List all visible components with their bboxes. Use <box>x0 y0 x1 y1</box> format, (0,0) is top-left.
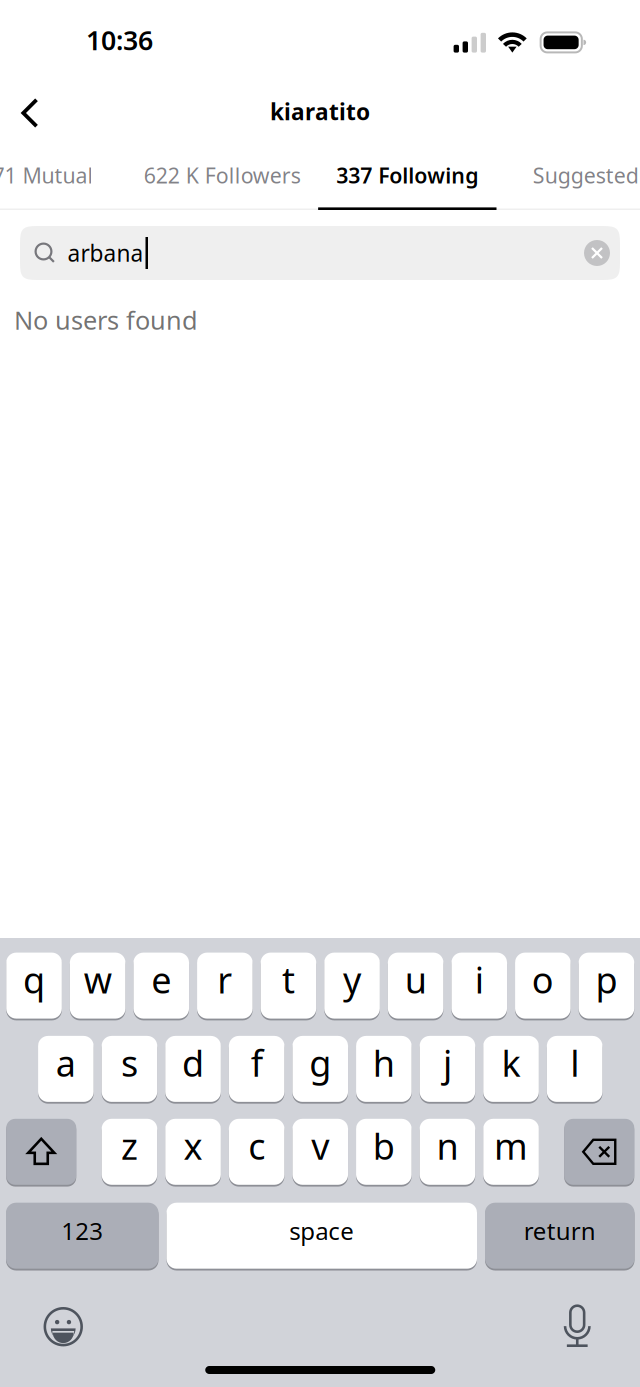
staticText: z <box>121 1122 138 1170</box>
button[interactable]: t <box>261 951 316 1021</box>
button[interactable]: g <box>292 1034 348 1104</box>
staticText: Suggested <box>533 161 639 189</box>
button[interactable]: Suggested <box>496 150 640 210</box>
staticText: kiaratito <box>270 96 370 126</box>
button[interactable]: Shift <box>6 1117 76 1187</box>
staticText: x <box>183 1122 202 1170</box>
button[interactable]: space <box>166 1201 477 1271</box>
staticText: w <box>84 956 112 1003</box>
button[interactable]: v <box>292 1117 348 1187</box>
staticText: o <box>532 956 554 1003</box>
button[interactable]: k <box>483 1034 539 1104</box>
button[interactable]: Back <box>4 86 60 142</box>
button[interactable]: 123 <box>6 1201 158 1271</box>
staticText: y <box>343 956 361 1003</box>
staticText: u <box>405 956 427 1003</box>
staticText: arbana <box>67 238 143 268</box>
button[interactable]: b <box>356 1117 412 1187</box>
staticText: 622 K Followers <box>144 161 301 189</box>
staticText: g <box>309 1039 331 1087</box>
staticText: 337 Following <box>336 161 478 189</box>
staticText: space <box>289 1215 354 1247</box>
button[interactable]: m <box>483 1117 539 1187</box>
button[interactable]: q <box>6 951 62 1021</box>
staticText: h <box>373 1039 395 1087</box>
staticText: j <box>443 1039 452 1087</box>
button[interactable]: f <box>229 1034 284 1104</box>
button[interactable]: s <box>102 1034 157 1104</box>
button[interactable]: Dictation <box>546 1300 608 1354</box>
button[interactable]: a <box>38 1034 94 1104</box>
staticText: f <box>251 1039 263 1087</box>
button[interactable]: h <box>356 1034 412 1104</box>
button[interactable]: 622 K Followers <box>126 150 318 210</box>
staticText: v <box>311 1122 329 1170</box>
staticText: a <box>56 1039 76 1087</box>
staticText: t <box>282 956 295 1003</box>
staticText: i <box>475 956 484 1003</box>
staticText: q <box>23 956 45 1003</box>
staticText: 171 Mutual <box>0 161 93 189</box>
staticText: return <box>524 1215 596 1247</box>
staticText: m <box>494 1122 528 1170</box>
staticText: 123 <box>61 1215 103 1247</box>
button[interactable]: x <box>165 1117 221 1187</box>
button[interactable]: 171 Mutual <box>0 150 126 210</box>
staticText: r <box>217 956 232 1003</box>
button[interactable]: i <box>451 951 507 1021</box>
staticText: b <box>373 1122 395 1170</box>
button[interactable]: Choose emoji <box>32 1300 94 1354</box>
button[interactable]: u <box>388 951 443 1021</box>
button[interactable]: p <box>579 951 634 1021</box>
button[interactable]: Clear text <box>582 238 612 268</box>
button[interactable]: n <box>420 1117 475 1187</box>
button[interactable]: z <box>102 1117 157 1187</box>
staticText: No users found <box>14 303 198 337</box>
button[interactable]: r <box>197 951 253 1021</box>
staticText: c <box>248 1122 265 1170</box>
button[interactable]: y <box>324 951 380 1021</box>
button[interactable]: o <box>515 951 571 1021</box>
button[interactable]: d <box>165 1034 221 1104</box>
button[interactable]: c <box>229 1117 284 1187</box>
button[interactable]: Delete <box>564 1117 634 1187</box>
staticText: k <box>502 1039 521 1087</box>
staticText: n <box>436 1122 458 1170</box>
staticText: s <box>121 1039 138 1087</box>
button[interactable]: e <box>133 951 189 1021</box>
button[interactable]: w <box>70 951 125 1021</box>
staticText: d <box>182 1039 204 1087</box>
button[interactable]: return <box>485 1201 634 1271</box>
staticText: l <box>570 1039 579 1087</box>
button[interactable]: l <box>547 1034 602 1104</box>
button[interactable]: j <box>420 1034 475 1104</box>
button[interactable]: 337 Following <box>318 150 496 210</box>
staticText: p <box>595 956 617 1003</box>
staticText: e <box>151 956 171 1003</box>
staticText: 10:36 <box>86 22 153 58</box>
